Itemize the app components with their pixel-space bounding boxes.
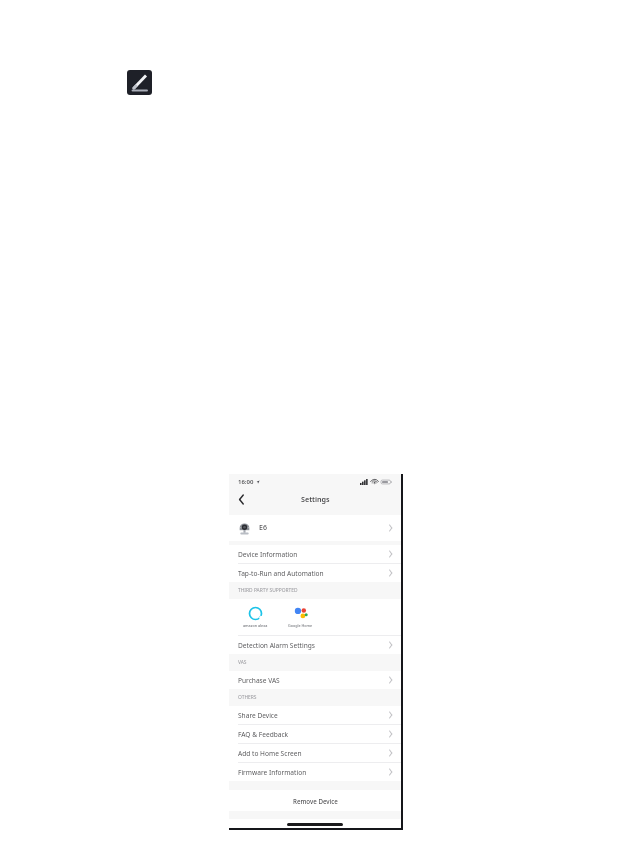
staticText: OTHERS	[238, 694, 257, 701]
staticText: E6	[259, 523, 267, 533]
button[interactable]: Google Home	[283, 606, 317, 628]
staticText: Device Information	[238, 550, 298, 559]
staticText: Add to Home Screen	[238, 749, 302, 758]
button[interactable]: E6	[229, 515, 401, 541]
button[interactable]: Add to Home Screen	[229, 744, 401, 762]
staticText: amazon alexa	[243, 623, 268, 628]
button[interactable]: FAQ & Feedback	[229, 725, 401, 743]
staticText: Share Device	[238, 711, 278, 720]
button[interactable]: Tap-to-Run and Automation	[229, 564, 401, 582]
button[interactable]: amazon alexa	[240, 606, 270, 628]
staticText: Firmware Information	[238, 768, 307, 777]
button[interactable]: Back	[234, 492, 248, 506]
staticText: Settings	[301, 494, 330, 504]
staticText: VAS	[238, 659, 247, 666]
button[interactable]: Purchase VAS	[229, 671, 401, 689]
button[interactable]: Device Information	[229, 545, 401, 563]
staticText: THIRD PARTY SUPPORTED	[238, 587, 298, 594]
staticText: Tap-to-Run and Automation	[238, 569, 324, 578]
button[interactable]: Detection Alarm Settings	[229, 636, 401, 654]
staticText: Remove Device	[293, 797, 338, 805]
button[interactable]: Firmware Information	[229, 763, 401, 781]
staticText: Detection Alarm Settings	[238, 641, 315, 650]
button[interactable]: Edit	[127, 70, 152, 95]
button[interactable]: Share Device	[229, 706, 401, 724]
staticText: Purchase VAS	[238, 676, 280, 685]
button[interactable]: Remove Device	[229, 790, 401, 811]
staticText: Google Home	[288, 623, 313, 628]
staticText: 16:00	[238, 478, 254, 486]
staticText: FAQ & Feedback	[238, 730, 289, 739]
